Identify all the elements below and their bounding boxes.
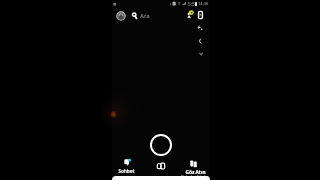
button[interactable]: Flash <box>197 25 203 31</box>
button[interactable]: Add friends <box>185 9 195 19</box>
staticText: Ara <box>140 12 150 19</box>
button[interactable]: Profile <box>116 11 126 21</box>
button[interactable]: Capture <box>150 134 172 156</box>
button[interactable]: More options <box>199 52 203 56</box>
button[interactable]: Sohbet <box>113 158 140 174</box>
button[interactable]: Göz Atın <box>180 158 210 178</box>
staticText: Göz Atın <box>184 169 207 176</box>
staticText: 14:36 <box>198 1 209 6</box>
staticText: Videolar Filmler <box>181 174 209 179</box>
button[interactable]: Ara <box>132 12 150 19</box>
button[interactable]: Flip camera <box>198 11 203 19</box>
staticText: 5:57 <box>188 1 198 7</box>
button[interactable]: Night mode <box>198 38 203 44</box>
button[interactable]: Memories <box>157 162 165 170</box>
staticText: Sohbet <box>113 168 140 174</box>
